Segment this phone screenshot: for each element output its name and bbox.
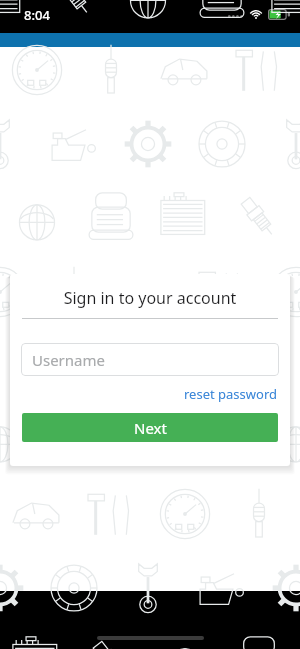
button[interactable]: reset password — [184, 383, 290, 405]
button[interactable]: Next — [22, 413, 278, 442]
staticText: Sign in to your account — [10, 287, 290, 309]
button[interactable]: Username — [21, 343, 279, 376]
staticText: Next — [134, 418, 167, 438]
staticText: reset password — [184, 385, 278, 403]
staticText: Username — [32, 350, 105, 370]
staticText: 8:04 — [24, 6, 50, 24]
